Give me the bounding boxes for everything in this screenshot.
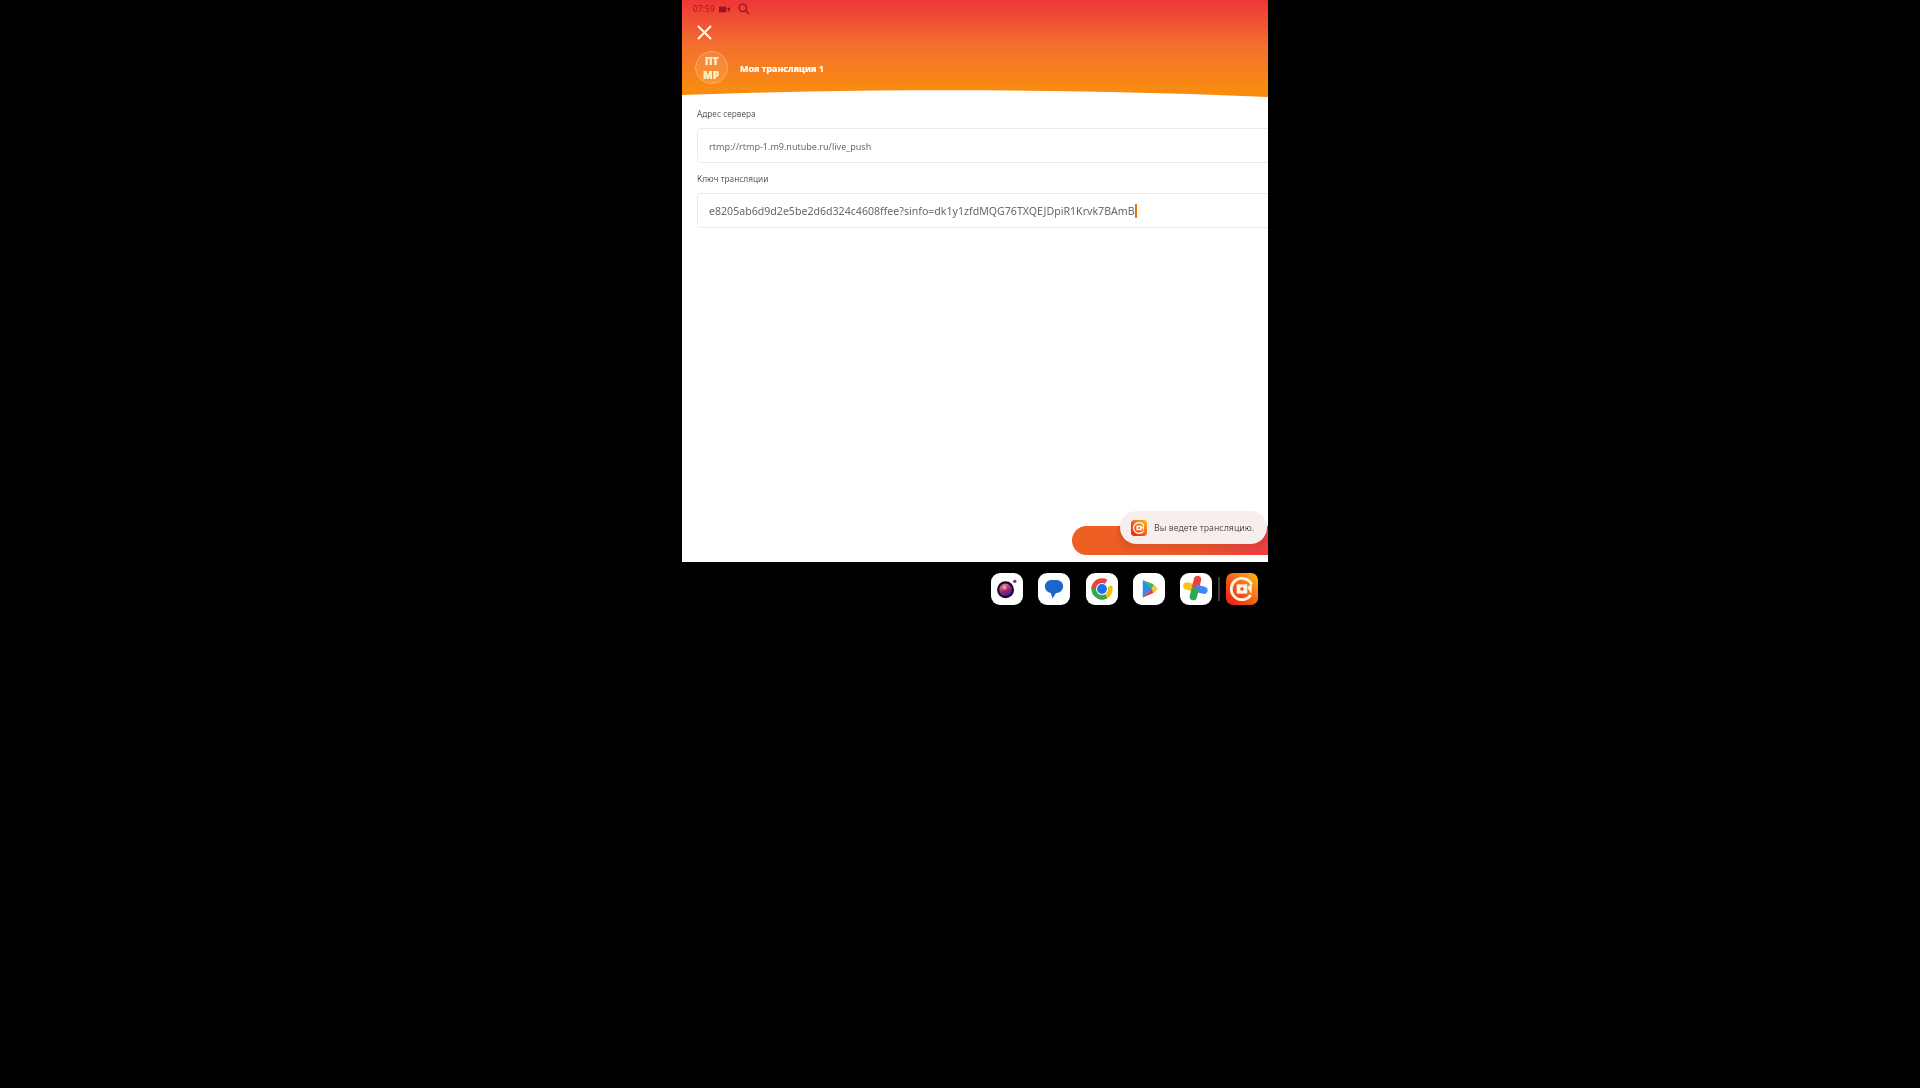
button[interactable]: Streaming app: [1226, 573, 1258, 605]
staticText: МР: [703, 68, 720, 82]
button[interactable]: Play Store: [1133, 573, 1165, 605]
staticText: rtmp://rtmp-1.m9.nutube.ru/live_push: [709, 140, 872, 152]
staticText: Адрес сервера: [697, 108, 756, 119]
staticText: e8205ab6d9d2e5be2d6d324c4608ffee?sinfo=d…: [709, 204, 1135, 218]
button[interactable]: Chrome: [1086, 573, 1118, 605]
button[interactable]: e8205ab6d9d2e5be2d6d324c4608ffee?sinfo=d…: [697, 193, 1268, 228]
button[interactable]: ПТ: [695, 51, 824, 84]
staticText: Вы ведете трансляцию.: [1154, 522, 1255, 534]
button[interactable]: Streaming notification: [1120, 511, 1267, 544]
button[interactable]: Camera: [991, 573, 1023, 605]
staticText: Моя трансляция 1: [740, 62, 824, 74]
staticText: ПТ: [705, 54, 719, 68]
button[interactable]: Photos: [1180, 573, 1212, 605]
button[interactable]: Messages: [1038, 573, 1070, 605]
button[interactable]: Stop stream: [1072, 526, 1268, 555]
staticText: 07:59: [693, 3, 715, 15]
staticText: Ключ трансляции: [697, 173, 769, 184]
button[interactable]: rtmp://rtmp-1.m9.nutube.ru/live_push: [697, 128, 1268, 163]
button[interactable]: Close: [692, 20, 716, 44]
